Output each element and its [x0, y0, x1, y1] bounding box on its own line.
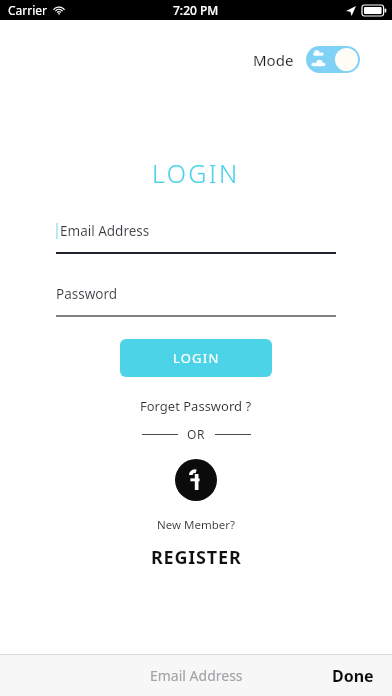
- staticText: Email Address: [60, 222, 150, 240]
- staticText: New Member?: [157, 517, 235, 533]
- button[interactable]: REGISTER: [143, 543, 250, 572]
- staticText: LOGIN: [173, 349, 220, 367]
- button[interactable]: Toggle day night mode: [306, 46, 360, 73]
- button[interactable]: Sign in with Facebook: [175, 459, 217, 501]
- staticText: Mode: [253, 50, 294, 70]
- staticText: Password: [56, 285, 118, 303]
- button[interactable]: Password: [56, 285, 336, 317]
- staticText: Email Address: [150, 666, 243, 685]
- button[interactable]: Done: [332, 665, 392, 687]
- button[interactable]: Email Address: [56, 222, 336, 254]
- button[interactable]: LOGIN: [120, 339, 272, 377]
- staticText: LOGIN: [152, 156, 240, 190]
- button[interactable]: Mode: [253, 46, 360, 73]
- staticText: 7:20 PM: [173, 2, 219, 18]
- button[interactable]: Forget Password ?: [136, 393, 256, 419]
- staticText: Carrier: [8, 2, 48, 18]
- staticText: OR: [187, 426, 206, 442]
